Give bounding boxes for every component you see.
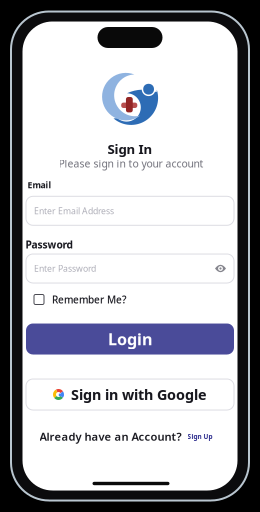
staticText: Sign In: [107, 140, 152, 158]
staticText: Email: [27, 179, 51, 191]
staticText: Enter Password: [34, 263, 96, 274]
staticText: Remember Me?: [52, 293, 126, 306]
staticText: Enter Email Address: [34, 205, 114, 217]
button[interactable]: Sign in with Google: [26, 379, 234, 410]
staticText: Password: [25, 238, 72, 251]
button[interactable]: Sign Up: [187, 432, 212, 441]
button[interactable]: Login: [26, 323, 234, 354]
staticText: Login: [108, 328, 152, 350]
button[interactable]: Remember Me?: [34, 291, 224, 307]
staticText: Sign Up: [187, 432, 212, 441]
staticText: Already have an Account?: [39, 429, 181, 444]
staticText: Sign in with Google: [71, 385, 207, 404]
staticText: Please sign in to your account: [58, 156, 203, 171]
button[interactable]: Show password: [215, 264, 226, 272]
